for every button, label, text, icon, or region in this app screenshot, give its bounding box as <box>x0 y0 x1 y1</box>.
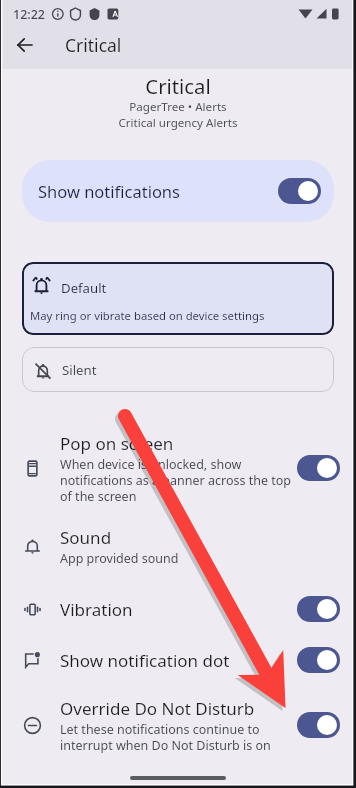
button[interactable]: Toggle <box>297 455 340 481</box>
button[interactable]: Toggle <box>297 647 340 673</box>
staticText: Critical urgency Alerts <box>0 115 356 131</box>
staticText: 12:22 <box>13 6 46 23</box>
staticText: Vibration <box>60 598 133 621</box>
staticText: Pop on screen <box>60 432 174 455</box>
staticText: Critical <box>0 72 356 100</box>
button[interactable]: Show notification dot <box>0 641 356 679</box>
button[interactable]: Show notifications <box>22 160 334 222</box>
staticText: Let these notifications continue to inte… <box>60 721 298 754</box>
button[interactable]: Override Do Not Disturb <box>0 695 356 755</box>
button[interactable]: Toggle <box>297 596 340 622</box>
staticText: Override Do Not Disturb <box>60 697 255 720</box>
staticText: When device is unlocked, show notificati… <box>60 456 298 505</box>
staticText: Default <box>61 279 107 297</box>
button[interactable]: Sound <box>0 520 356 572</box>
staticText: App provided sound <box>60 550 179 567</box>
button[interactable]: Silent <box>22 347 334 392</box>
staticText: May ring or vibrate based on device sett… <box>30 308 265 323</box>
staticText: Show notifications <box>38 180 180 202</box>
staticText: Show notification dot <box>60 649 230 672</box>
button[interactable]: Toggle <box>297 712 340 738</box>
button[interactable]: Back <box>7 27 43 63</box>
staticText: Critical <box>65 33 122 57</box>
button[interactable]: Toggle <box>278 178 321 204</box>
button[interactable]: Default <box>22 262 334 335</box>
button[interactable]: Vibration <box>0 590 356 628</box>
staticText: PagerTree • Alerts <box>0 99 356 115</box>
staticText: Silent <box>62 361 97 379</box>
staticText: Sound <box>60 526 112 549</box>
button[interactable]: Pop on screen <box>0 429 356 507</box>
